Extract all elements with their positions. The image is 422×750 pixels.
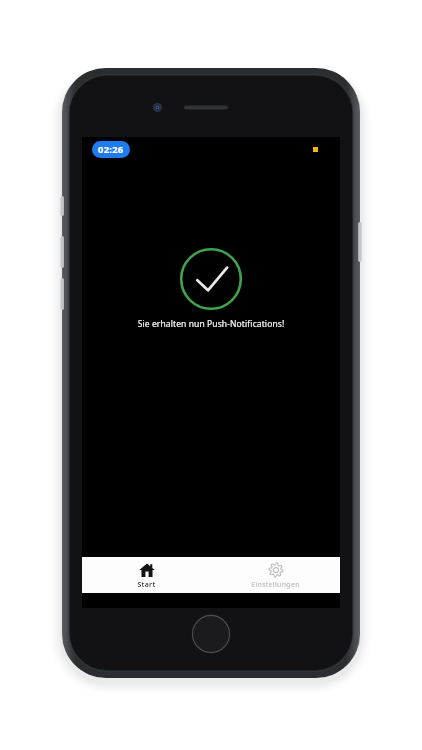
other: Success <box>179 247 243 311</box>
staticText: Sie erhalten nun Push-Notifications! <box>82 318 340 330</box>
button[interactable]: Start <box>82 559 211 592</box>
button[interactable]: Einstellungen <box>211 559 340 592</box>
staticText: Start <box>137 580 156 590</box>
staticText: 02:26 <box>98 143 124 156</box>
staticText: Einstellungen <box>251 580 300 590</box>
button[interactable]: 02:26 <box>92 141 130 158</box>
